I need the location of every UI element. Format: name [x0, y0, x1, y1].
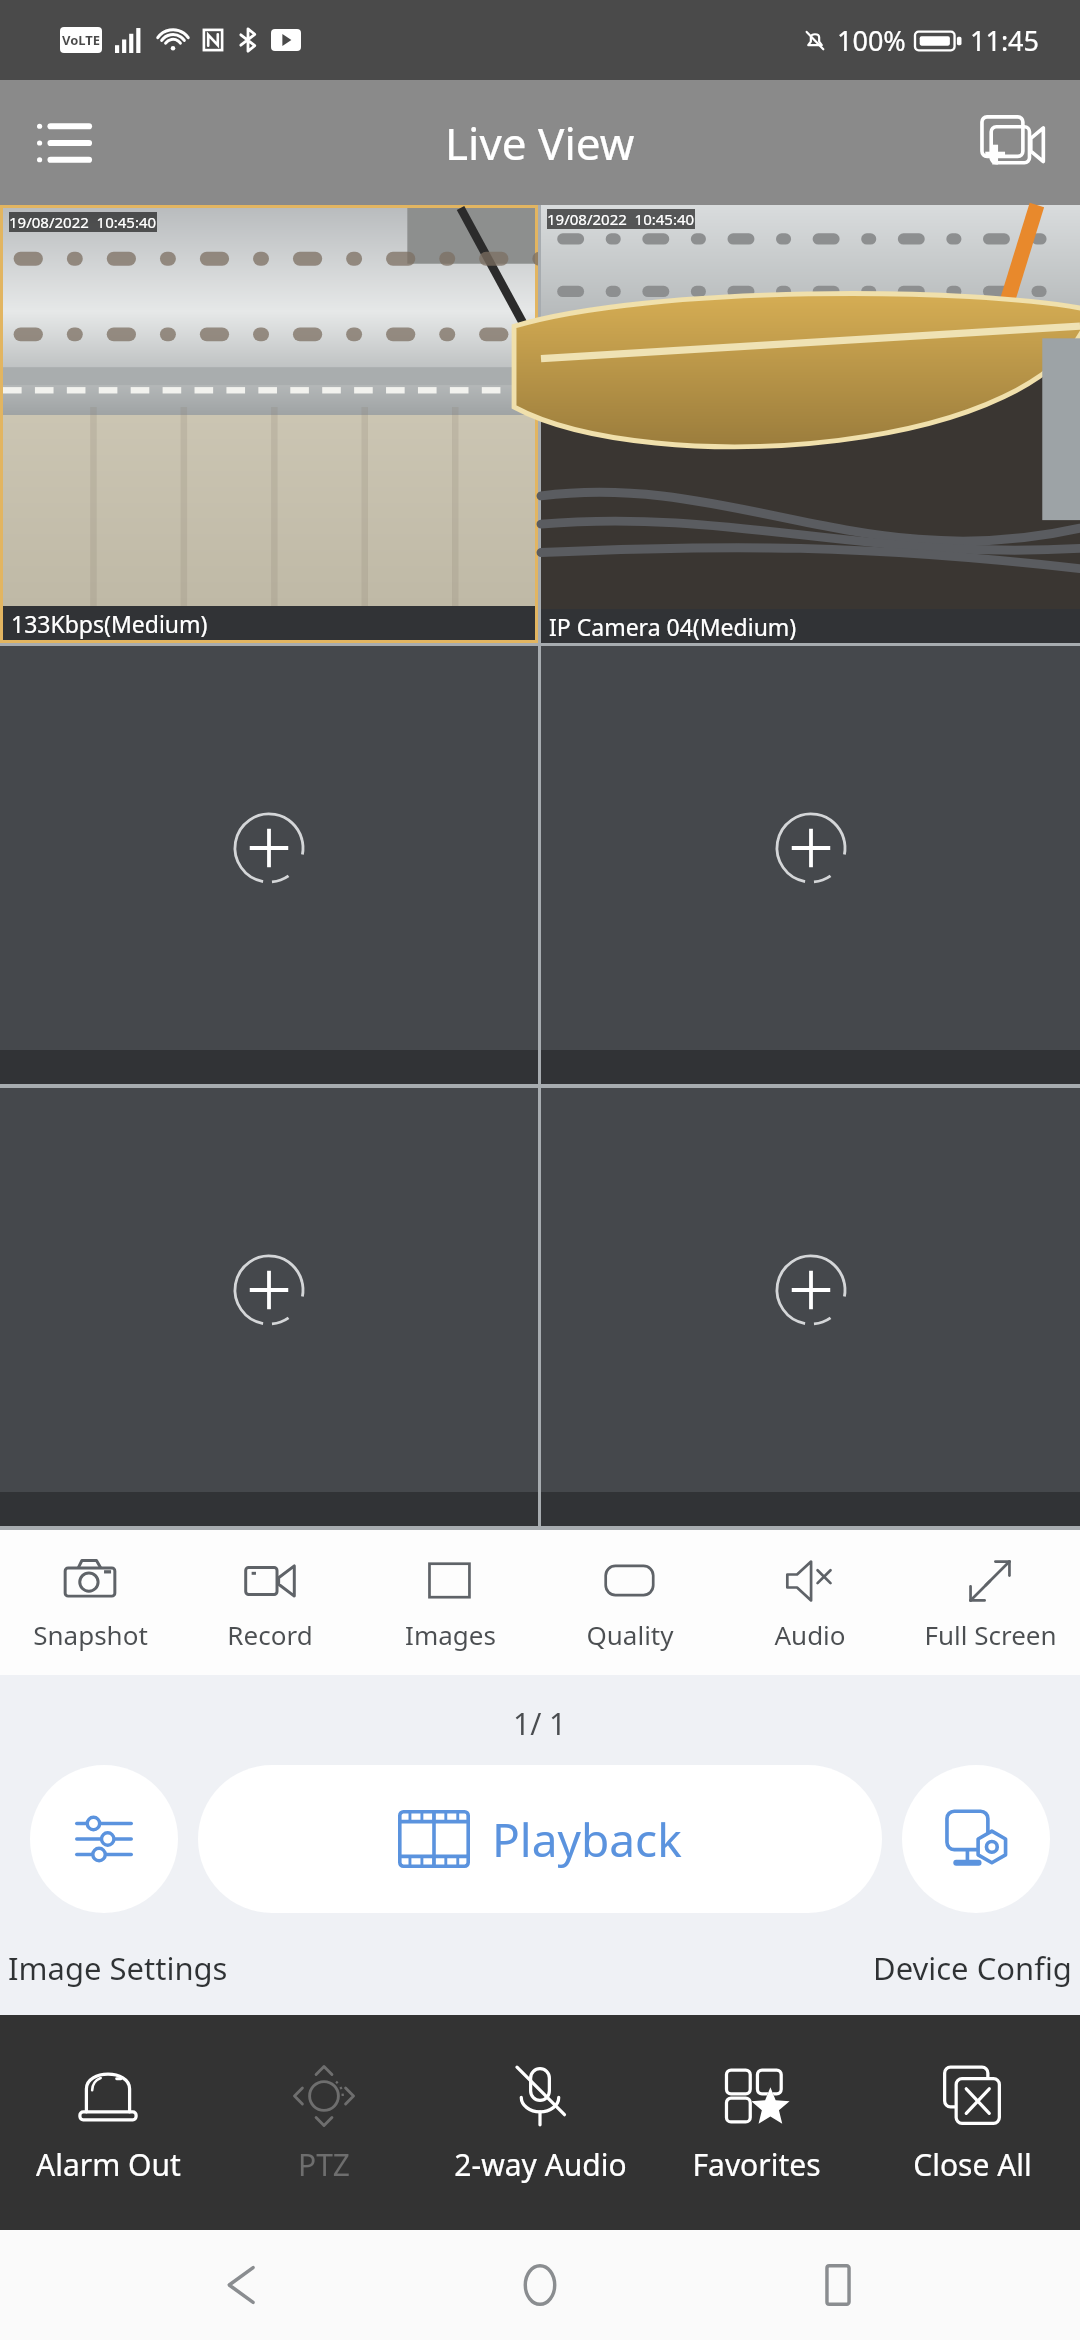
staticText: 100%	[837, 22, 906, 59]
button[interactable]: Menu	[18, 98, 108, 188]
button[interactable]: Add camera window	[541, 646, 1080, 1084]
button[interactable]: Image Settings	[30, 1765, 178, 1913]
button[interactable]: Device Config	[902, 1765, 1050, 1913]
button[interactable]: Images	[360, 1530, 540, 1675]
button[interactable]: 2-way Audio	[432, 2015, 648, 2230]
staticText: Playback	[492, 1808, 682, 1871]
button[interactable]: Home	[485, 2230, 595, 2340]
staticText: 19/08/2022 10:45:40	[9, 212, 157, 232]
staticText: Image Settings	[8, 1947, 228, 1989]
button[interactable]: Close All	[864, 2015, 1080, 2230]
staticText: 19/08/2022 10:45:40	[547, 209, 695, 229]
staticText: Live View	[445, 113, 635, 173]
staticText: Device Config	[873, 1947, 1072, 1989]
button[interactable]: Add camera window	[0, 1088, 538, 1526]
button[interactable]: Full Screen	[900, 1530, 1080, 1675]
staticText: 133Kbps(Medium)	[11, 608, 208, 639]
button[interactable]: Playback	[198, 1765, 882, 1913]
staticText: 1/ 1	[513, 1703, 567, 1744]
button[interactable]: Alarm Out	[0, 2015, 216, 2230]
staticText: IP Camera 04(Medium)	[549, 611, 797, 642]
staticText: 2-way Audio	[454, 2144, 627, 2185]
staticText: Full Screen	[924, 1617, 1057, 1652]
button[interactable]: Add camera window	[541, 1088, 1080, 1526]
staticText: Images	[405, 1617, 496, 1652]
button[interactable]: Quality	[540, 1530, 720, 1675]
staticText: 11:45	[970, 22, 1040, 59]
button[interactable]: 19/08/2022 10:45:40	[3, 208, 535, 640]
staticText: Alarm Out	[36, 2144, 181, 2185]
button[interactable]: 19/08/2022 10:45:40	[541, 205, 1080, 643]
staticText: PTZ	[298, 2144, 350, 2185]
button[interactable]: Add camera	[963, 95, 1058, 190]
staticText: Close All	[913, 2144, 1032, 2185]
button[interactable]: Record	[180, 1530, 360, 1675]
button[interactable]: Audio	[720, 1530, 900, 1675]
staticText: Record	[227, 1617, 313, 1652]
button[interactable]: Back	[188, 2230, 298, 2340]
button: PTZ	[216, 2015, 432, 2230]
button[interactable]: Add camera window	[0, 646, 538, 1084]
button[interactable]: Snapshot	[0, 1530, 180, 1675]
button[interactable]: Favorites	[648, 2015, 864, 2230]
staticText: VoLTE	[62, 31, 101, 49]
staticText: Audio	[774, 1617, 846, 1652]
button[interactable]: Recent apps	[783, 2230, 893, 2340]
staticText: Favorites	[692, 2144, 821, 2185]
staticText: Snapshot	[33, 1617, 148, 1652]
staticText: Quality	[586, 1617, 674, 1652]
